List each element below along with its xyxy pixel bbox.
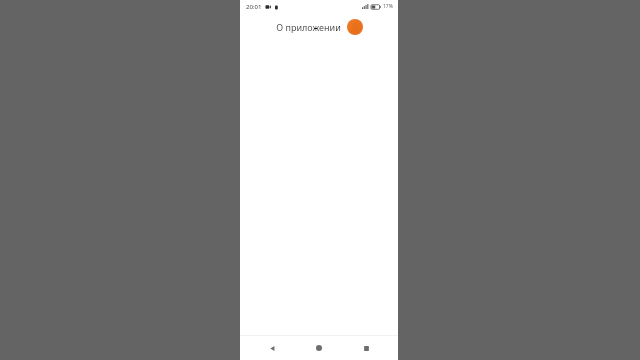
staticText: О приложении [276,21,341,33]
staticText: 17% [383,3,393,10]
staticText: 20:01 [246,3,262,11]
button[interactable]: Профиль [347,19,363,35]
button[interactable]: Главный экран [304,336,334,360]
button[interactable]: Назад [257,336,287,360]
button[interactable]: Недавние приложения [351,336,381,360]
